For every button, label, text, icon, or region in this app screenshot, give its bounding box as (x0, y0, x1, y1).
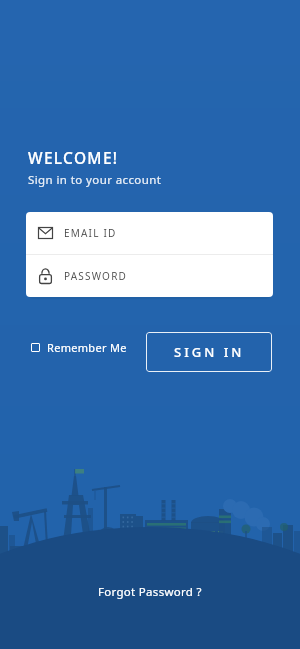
button[interactable]: SIGN IN (146, 332, 272, 372)
staticText: WELCOME! (28, 147, 119, 168)
staticText: Sign in to your account (28, 172, 162, 188)
staticText: Remember Me (47, 340, 127, 355)
button[interactable]: EMAIL ID (26, 212, 273, 254)
button[interactable]: PASSWORD (26, 255, 273, 297)
staticText: SIGN IN (174, 343, 245, 361)
button[interactable]: Remember Me (31, 340, 127, 355)
staticText: EMAIL ID (64, 226, 117, 240)
staticText: PASSWORD (64, 269, 128, 283)
staticText: Forgot Password ? (98, 584, 202, 600)
button[interactable]: Forgot Password ? (92, 580, 208, 604)
